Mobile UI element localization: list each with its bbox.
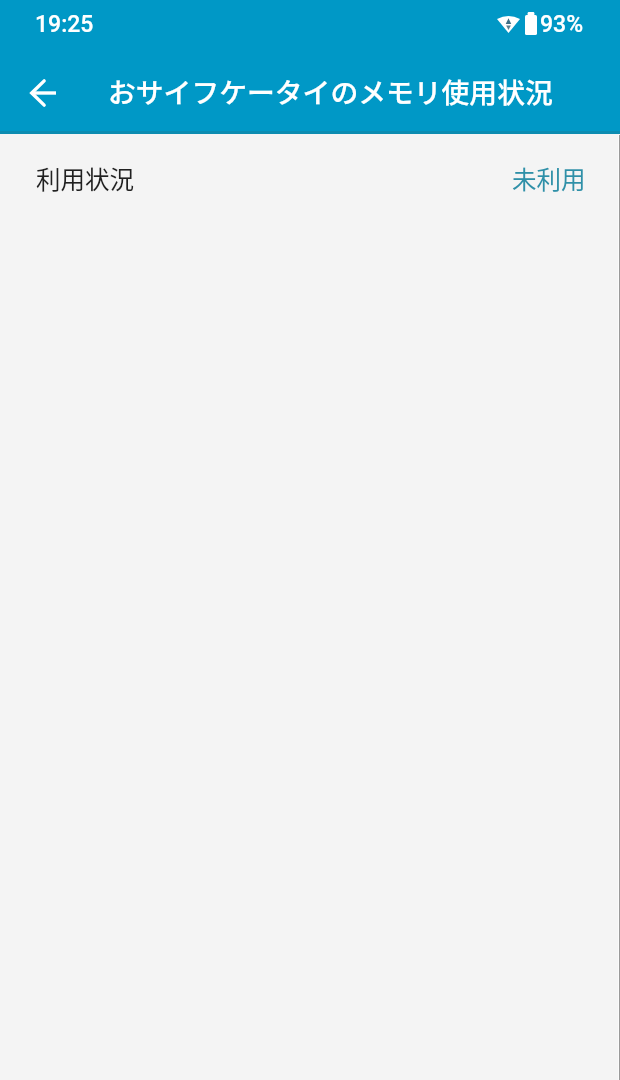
staticText: おサイフケータイのメモリ使用状況: [108, 71, 553, 111]
staticText: 利用状況: [36, 161, 134, 196]
button[interactable]: 利用状況: [0, 134, 620, 223]
staticText: 19:25: [35, 11, 94, 38]
staticText: 93%: [540, 11, 584, 38]
staticText: 未利用: [512, 161, 586, 196]
button[interactable]: Back: [13, 63, 72, 122]
